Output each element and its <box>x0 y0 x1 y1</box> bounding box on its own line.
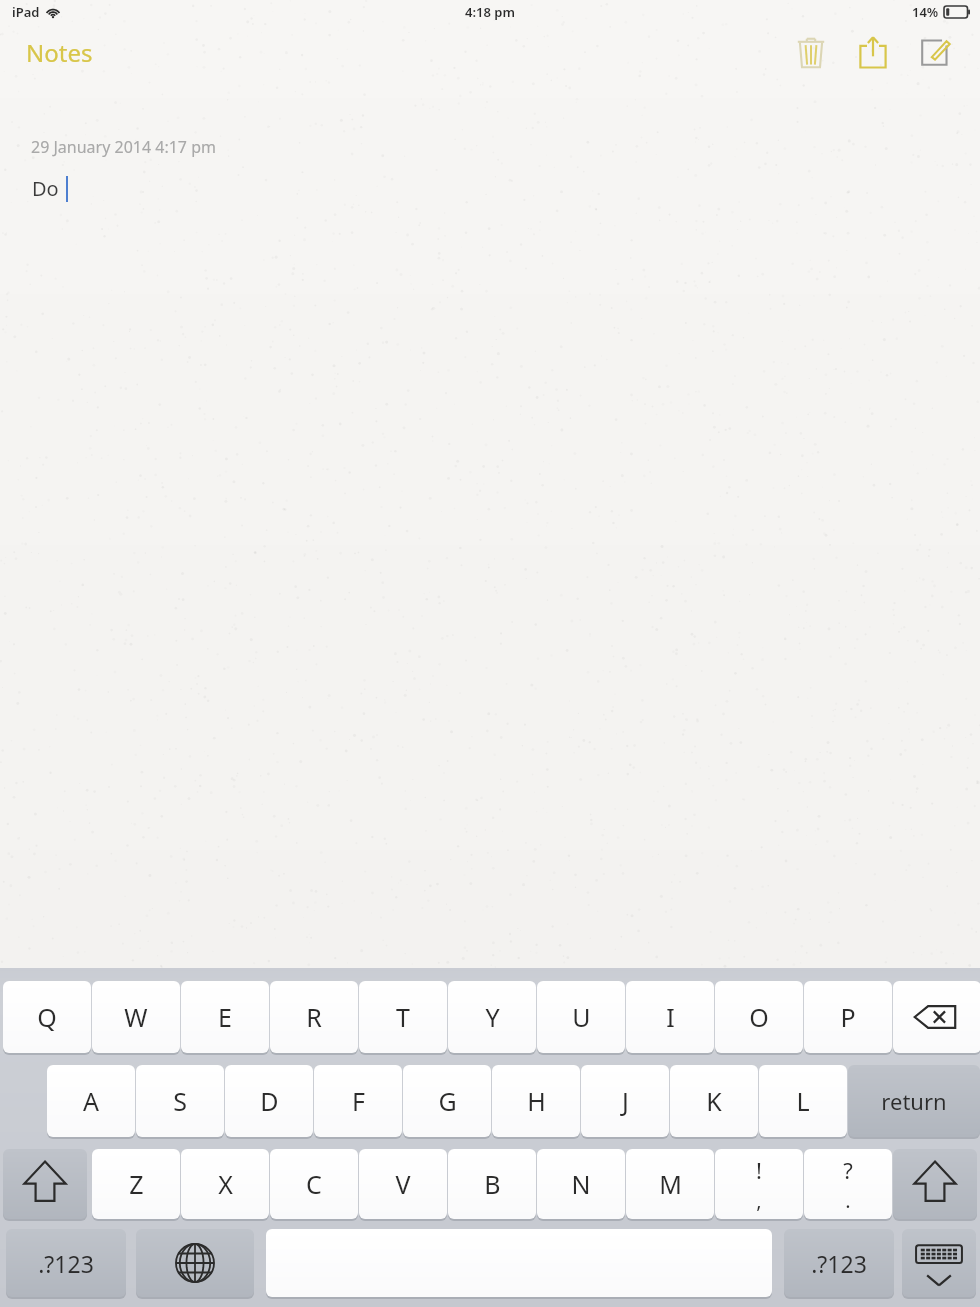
staticText: D <box>260 1084 279 1118</box>
staticText: Notes <box>26 36 93 69</box>
button[interactable]: Shift <box>893 1149 977 1219</box>
staticText: C <box>306 1167 322 1201</box>
staticText: F <box>352 1084 365 1118</box>
button[interactable]: ! <box>715 1149 803 1219</box>
staticText: J <box>622 1084 629 1118</box>
button[interactable]: U <box>537 981 625 1053</box>
staticText: return <box>881 1086 947 1116</box>
staticText: 29 January 2014 4:17 pm <box>31 136 216 158</box>
button[interactable]: J <box>581 1065 669 1137</box>
staticText: M <box>659 1167 682 1201</box>
staticText: G <box>438 1084 457 1118</box>
button[interactable]: A <box>47 1065 135 1137</box>
staticText: R <box>306 1000 322 1034</box>
staticText: ? <box>843 1155 853 1185</box>
staticText: B <box>484 1167 501 1201</box>
staticText: O <box>749 1000 769 1034</box>
button[interactable]: Shift <box>3 1149 87 1219</box>
button[interactable]: B <box>448 1149 536 1219</box>
staticText: 14% <box>912 3 939 21</box>
button[interactable]: Hide keyboard <box>902 1229 976 1297</box>
button[interactable]: H <box>492 1065 580 1137</box>
button[interactable]: Notes <box>16 30 103 75</box>
button[interactable]: T <box>359 981 447 1053</box>
staticText: W <box>124 1000 148 1034</box>
staticText: I <box>666 1000 675 1034</box>
button[interactable]: G <box>403 1065 491 1137</box>
button[interactable]: Q <box>3 981 91 1053</box>
button[interactable]: S <box>136 1065 224 1137</box>
button[interactable]: Z <box>92 1149 180 1219</box>
staticText: , <box>756 1187 762 1214</box>
staticText: V <box>395 1167 411 1201</box>
staticText: H <box>527 1084 546 1118</box>
button[interactable]: .?123 <box>784 1229 894 1297</box>
staticText: . <box>845 1187 851 1214</box>
button[interactable]: X <box>181 1149 269 1219</box>
button[interactable]: Next keyboard <box>136 1229 254 1297</box>
staticText: L <box>796 1084 810 1118</box>
button[interactable]: .?123 <box>6 1229 126 1297</box>
staticText: .?123 <box>38 1248 94 1279</box>
button[interactable]: Backspace <box>893 981 980 1053</box>
staticText: .?123 <box>811 1248 867 1279</box>
staticText: A <box>83 1084 99 1118</box>
staticText: K <box>706 1084 722 1118</box>
staticText: iPad <box>12 3 40 21</box>
button[interactable]: ? <box>804 1149 892 1219</box>
button[interactable]: Share <box>842 26 904 78</box>
button[interactable]: return <box>848 1065 980 1137</box>
staticText: Do <box>32 175 59 202</box>
staticText: X <box>218 1167 233 1201</box>
staticText: Y <box>485 1000 500 1034</box>
button[interactable]: L <box>759 1065 847 1137</box>
staticText: S <box>173 1084 187 1118</box>
staticText: 4:18 pm <box>465 3 515 21</box>
staticText: ! <box>756 1155 762 1185</box>
button[interactable]: W <box>92 981 180 1053</box>
button[interactable]: Y <box>448 981 536 1053</box>
button[interactable]: O <box>715 981 803 1053</box>
button[interactable]: D <box>225 1065 313 1137</box>
staticText: E <box>218 1000 232 1034</box>
button[interactable]: Delete note <box>780 26 842 78</box>
button[interactable]: K <box>670 1065 758 1137</box>
button[interactable]: E <box>181 981 269 1053</box>
button[interactable]: M <box>626 1149 714 1219</box>
staticText: U <box>572 1000 591 1034</box>
button[interactable]: New note <box>904 26 966 78</box>
button[interactable]: P <box>804 981 892 1053</box>
staticText: Q <box>37 1000 57 1034</box>
button[interactable]: I <box>626 981 714 1053</box>
button[interactable]: C <box>270 1149 358 1219</box>
staticText: T <box>396 1000 410 1034</box>
button[interactable]: R <box>270 981 358 1053</box>
button[interactable]: N <box>537 1149 625 1219</box>
staticText: Z <box>129 1167 144 1201</box>
staticText: P <box>840 1000 856 1034</box>
button[interactable]: F <box>314 1065 402 1137</box>
button[interactable]: V <box>359 1149 447 1219</box>
staticText: N <box>571 1167 591 1201</box>
